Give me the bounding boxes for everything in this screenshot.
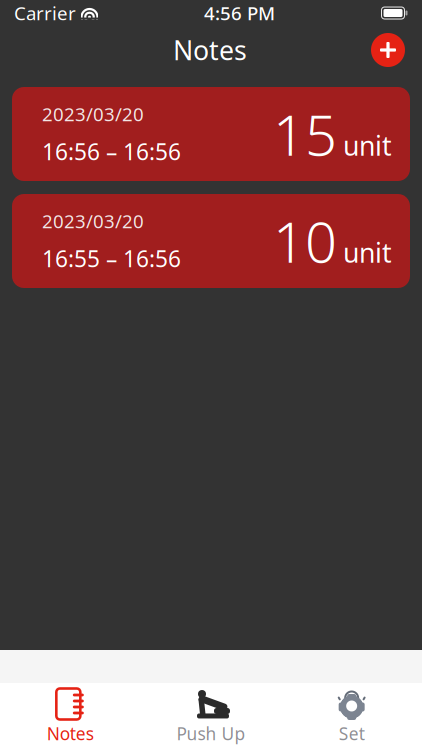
staticText: Push Up [176,722,245,745]
staticText: 10 [273,204,337,278]
button[interactable]: 2023/03/20 [12,87,410,181]
button[interactable]: 2023/03/20 [12,194,410,288]
staticText: 15 [273,97,337,171]
staticText: unit [343,235,392,270]
staticText: 2023/03/20 [42,209,144,233]
staticText: Notes [173,32,247,68]
staticText: 2023/03/20 [42,102,144,126]
button[interactable]: Add note [366,28,410,72]
staticText: unit [343,128,392,163]
staticText: 16:56 – 16:56 [42,136,181,166]
staticText: Notes [47,722,94,745]
staticText: 16:55 – 16:56 [42,243,181,273]
button[interactable]: Notes [0,685,141,747]
staticText: 4:56 PM [204,1,275,25]
staticText: Carrier [14,1,76,25]
staticText: Set [339,722,365,745]
button[interactable]: Set [281,685,422,747]
button[interactable]: Push Up [141,685,281,747]
